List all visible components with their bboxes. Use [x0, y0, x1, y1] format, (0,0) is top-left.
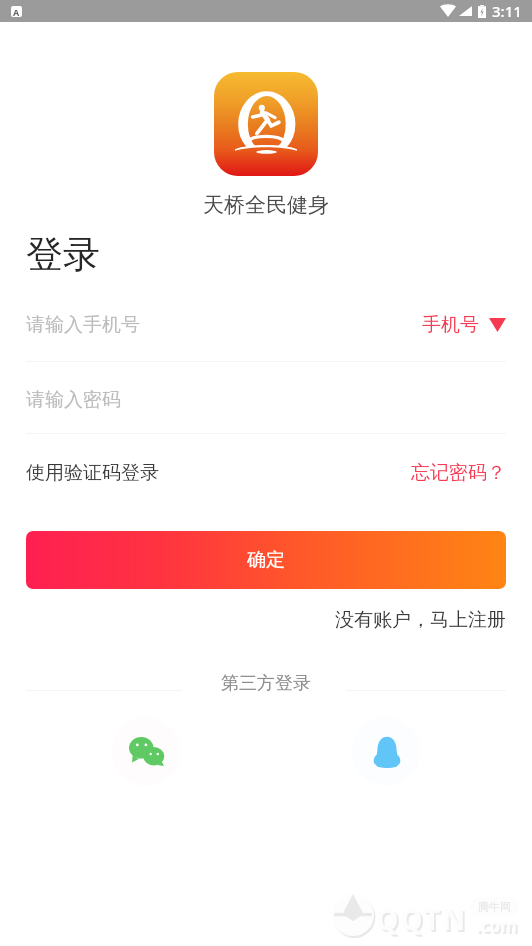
button[interactable]: 手机号: [422, 313, 506, 337]
staticText: A: [13, 6, 20, 17]
button[interactable]: WeChat login: [112, 717, 181, 786]
staticText: 登录: [26, 231, 100, 278]
staticText: 请输入密码: [26, 388, 121, 412]
button[interactable]: QQ login: [352, 717, 421, 786]
staticText: QQTN: [376, 900, 468, 938]
button[interactable]: 没有账户，马上注册: [335, 608, 506, 632]
button[interactable]: 忘记密码？: [411, 461, 506, 485]
staticText: 腾牛网: [478, 900, 511, 914]
staticText: .com: [478, 916, 519, 939]
staticText: 确定: [247, 548, 285, 572]
button[interactable]: 使用验证码登录: [26, 461, 159, 485]
staticText: 天桥全民健身: [203, 192, 329, 218]
staticText: 手机号: [422, 313, 479, 337]
staticText: .com: [476, 914, 517, 937]
staticText: 请输入手机号: [26, 313, 140, 337]
staticText: 第三方登录: [221, 672, 311, 695]
staticText: QQTN: [378, 902, 470, 940]
staticText: 3:11: [492, 1, 522, 21]
button[interactable]: 确定: [26, 531, 506, 589]
